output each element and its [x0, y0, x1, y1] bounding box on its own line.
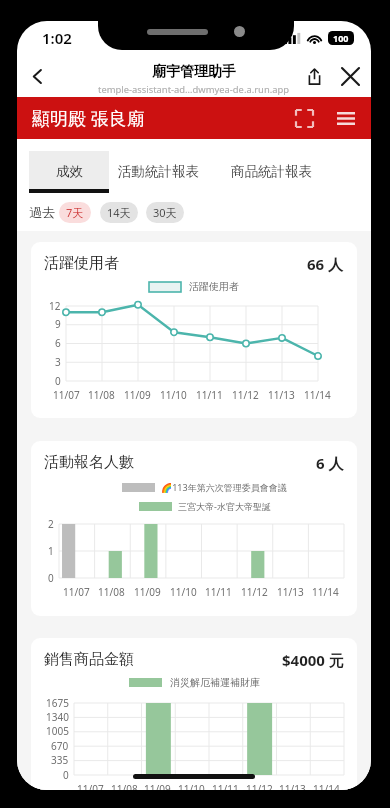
button[interactable]: Back [19, 58, 55, 94]
staticText: 11/09 [134, 585, 161, 599]
button[interactable]: 7天 [59, 202, 91, 223]
staticText: 12 [49, 299, 61, 313]
staticText: 1675 [46, 696, 69, 710]
staticText: 11/07 [53, 388, 80, 402]
button[interactable]: Fullscreen [283, 97, 325, 139]
staticText: 0 [48, 571, 54, 585]
staticText: 3 [55, 355, 61, 369]
staticText: 100 [333, 32, 349, 44]
staticText: 11/10 [170, 585, 197, 599]
staticText: 廟宇管理助手 [152, 63, 236, 81]
staticText: 11/08 [111, 782, 138, 790]
staticText: 6 人 [316, 453, 344, 473]
staticText: 11/13 [268, 388, 295, 402]
button[interactable]: 成效 [29, 151, 109, 193]
staticText: 11/14 [304, 388, 331, 402]
staticText: 7天 [66, 205, 84, 220]
staticText: 活躍使用者 [44, 254, 119, 273]
staticText: 1005 [46, 724, 69, 738]
staticText: 30天 [153, 205, 177, 220]
staticText: 銷售商品金額 [44, 650, 134, 669]
staticText: 0 [55, 374, 61, 388]
staticText: 11/08 [88, 388, 115, 402]
staticText: 11/10 [160, 388, 187, 402]
staticText: 1340 [46, 710, 69, 724]
staticText: 活動報名人數 [44, 453, 134, 472]
staticText: 11/13 [279, 782, 306, 790]
staticText: 335 [51, 753, 69, 767]
staticText: 6 [55, 336, 61, 350]
staticText: 顯明殿 張良廟 [32, 106, 145, 131]
staticText: 11/12 [232, 388, 259, 402]
staticText: 11/07 [63, 585, 90, 599]
staticText: 9 [55, 317, 61, 331]
staticText: 消災解厄補運補財庫 [170, 676, 260, 689]
staticText: 11/08 [98, 585, 125, 599]
button[interactable]: 商品統計報表 [207, 151, 335, 193]
staticText: 66 人 [307, 254, 344, 274]
staticText: 11/11 [196, 388, 223, 402]
staticText: 2 [48, 517, 54, 531]
button[interactable]: Close [331, 57, 369, 95]
staticText: 1 [48, 544, 54, 558]
staticText: 過去 [29, 204, 55, 220]
button[interactable]: 14天 [100, 202, 138, 223]
staticText: temple-assistant-ad…dwmyea-de.a.run.app [98, 83, 290, 96]
staticText: 11/07 [77, 782, 104, 790]
staticText: 670 [51, 739, 69, 753]
staticText: 11/09 [144, 782, 171, 790]
staticText: 活動統計報表 [118, 163, 199, 180]
staticText: 11/12 [241, 585, 268, 599]
staticText: $4000 元 [282, 650, 344, 670]
staticText: 11/11 [205, 585, 232, 599]
staticText: 成效 [56, 163, 83, 180]
button[interactable]: Menu [325, 97, 367, 139]
staticText: 11/14 [313, 782, 340, 790]
staticText: 1:02 [42, 28, 72, 48]
staticText: 11/09 [124, 388, 151, 402]
button[interactable]: 活動統計報表 [109, 151, 207, 193]
button[interactable]: 30天 [146, 202, 184, 223]
staticText: 11/12 [246, 782, 273, 790]
staticText: 活躍使用者 [189, 280, 239, 293]
staticText: 商品統計報表 [231, 163, 312, 180]
button[interactable]: Share [297, 59, 331, 93]
staticText: 三宮大帝-水官大帝聖誕 [178, 500, 271, 512]
staticText: 🌈113年第六次管理委員會會議 [161, 481, 287, 493]
staticText: 14天 [107, 205, 131, 220]
staticText: 0 [63, 768, 69, 782]
staticText: 11/13 [277, 585, 304, 599]
staticText: 11/14 [312, 585, 339, 599]
staticText: 11/10 [178, 782, 205, 790]
staticText: 11/11 [212, 782, 239, 790]
